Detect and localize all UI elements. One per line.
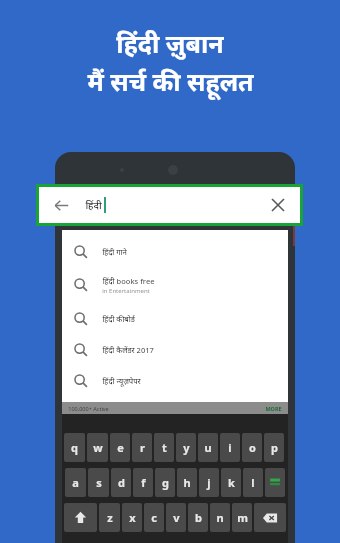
button[interactable]: k — [221, 468, 241, 497]
staticText: हिंदी कैलेंडर 2017 — [102, 345, 154, 355]
button[interactable]: r — [132, 433, 152, 462]
staticText: u — [204, 440, 212, 455]
staticText: n — [216, 510, 224, 525]
staticText: w — [93, 440, 103, 455]
staticText: i — [228, 440, 232, 455]
staticText: v — [173, 510, 180, 525]
staticText: हिंदी — [85, 198, 102, 212]
staticText: b — [195, 510, 202, 525]
staticText: s — [96, 475, 102, 490]
button[interactable]: u — [198, 433, 218, 462]
staticText: q — [71, 440, 78, 455]
staticText: k — [228, 475, 235, 490]
staticText: in Entertainment — [102, 287, 150, 295]
button[interactable]: Enter — [265, 468, 285, 497]
staticText: हिंदी ज़ुबान — [116, 26, 224, 60]
button[interactable]: हिंदी गाने — [62, 236, 288, 267]
staticText: हिंदी न्यूज़पेपर — [102, 376, 141, 386]
staticText: y — [183, 440, 190, 455]
button[interactable]: Back — [51, 195, 71, 215]
button[interactable]: q — [64, 433, 85, 462]
button[interactable]: x — [122, 503, 142, 532]
staticText: MORE — [265, 405, 282, 412]
staticText: f — [141, 475, 146, 490]
staticText: g — [162, 475, 169, 490]
button[interactable]: हिंदी न्यूज़पेपर — [62, 365, 288, 396]
staticText: p — [271, 440, 278, 455]
button[interactable]: p — [264, 433, 284, 462]
button[interactable]: f — [133, 468, 153, 497]
staticText: 100,000+ Active — [68, 405, 109, 412]
button[interactable]: y — [176, 433, 196, 462]
staticText: a — [72, 475, 79, 490]
staticText: m — [237, 510, 248, 525]
button[interactable]: Backspace — [254, 503, 286, 532]
button[interactable]: s — [88, 468, 109, 497]
button[interactable]: हिंदी कीबोर्ड — [62, 303, 288, 334]
button[interactable]: i — [220, 433, 240, 462]
button[interactable]: 100,000+ Active — [62, 402, 288, 414]
button[interactable]: Back — [39, 187, 300, 223]
staticText: r — [140, 440, 145, 455]
button[interactable]: h — [177, 468, 197, 497]
button[interactable]: w — [87, 433, 108, 462]
button[interactable]: e — [110, 433, 130, 462]
staticText: z — [107, 510, 113, 525]
button[interactable]: g — [155, 468, 175, 497]
button[interactable]: d — [111, 468, 131, 497]
staticText: x — [129, 510, 136, 525]
staticText: हिंदी कीबोर्ड — [102, 314, 135, 324]
button[interactable]: Shift — [64, 503, 97, 532]
staticText: e — [117, 440, 124, 455]
staticText: j — [207, 475, 211, 490]
staticText: l — [251, 475, 255, 490]
button[interactable]: हिंदी कैलेंडर 2017 — [62, 334, 288, 365]
staticText: मैं सर्च की सहूलत — [87, 64, 254, 98]
button[interactable]: z — [99, 503, 120, 532]
button[interactable]: a — [65, 468, 86, 497]
button[interactable]: t — [154, 433, 174, 462]
button[interactable]: l — [243, 468, 263, 497]
staticText: हिंदी books free — [102, 276, 155, 286]
button[interactable]: हिंदी books free — [62, 267, 288, 303]
staticText: o — [249, 440, 256, 455]
staticText: d — [118, 475, 125, 490]
staticText: t — [162, 440, 167, 455]
button[interactable]: o — [242, 433, 262, 462]
button[interactable]: m — [232, 503, 252, 532]
staticText: हिंदी गाने — [102, 247, 127, 257]
staticText: h — [183, 475, 191, 490]
button[interactable]: b — [188, 503, 208, 532]
button[interactable]: v — [166, 503, 186, 532]
button[interactable]: n — [210, 503, 230, 532]
button[interactable]: j — [199, 468, 219, 497]
button[interactable]: Clear — [268, 195, 288, 215]
button[interactable]: c — [144, 503, 164, 532]
staticText: c — [151, 510, 157, 525]
